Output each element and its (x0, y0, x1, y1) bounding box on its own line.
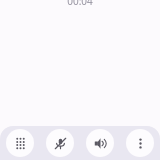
button[interactable]: Speaker (86, 129, 114, 157)
button[interactable]: Dialpad (6, 129, 34, 157)
button[interactable]: More options (126, 129, 154, 157)
button[interactable]: Unmute microphone (46, 129, 74, 157)
staticText: 00:04 (0, 0, 160, 8)
